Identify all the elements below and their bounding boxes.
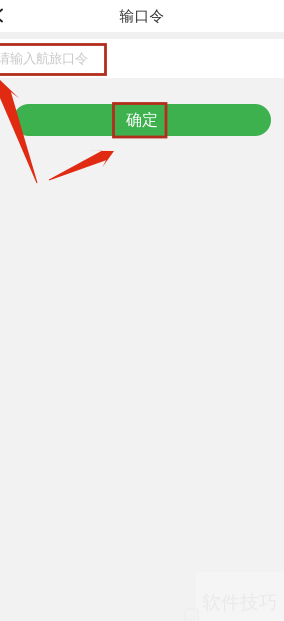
staticText: 请输入航旅口令 [0, 50, 88, 67]
staticText: 确定 [126, 110, 158, 130]
staticText: 软件技巧 [202, 591, 278, 614]
staticText: 输口令 [119, 7, 164, 25]
button[interactable]: Back [0, 0, 20, 32]
button[interactable]: 确定 [13, 104, 271, 136]
button[interactable]: 请输入航旅口令 [0, 39, 284, 78]
